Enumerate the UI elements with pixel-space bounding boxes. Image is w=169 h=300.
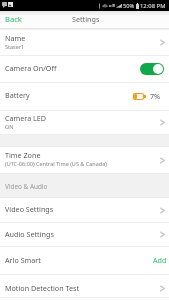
staticText: Back [5,14,22,24]
button[interactable]: Battery [0,83,169,110]
staticText: Video & Audio [5,182,48,191]
staticText: Motion Detection Test [5,283,160,293]
other: Open [160,231,165,238]
other: Battery 7 percent [133,93,146,100]
other: Open [160,285,165,292]
staticText: Battery [5,90,133,100]
staticText: 50% [123,2,135,10]
button[interactable]: Video Settings [0,198,169,222]
button[interactable]: Time Zone [0,147,169,173]
staticText: Add [153,255,167,265]
staticText: Camera LED [5,113,47,123]
staticText: Audio Settings [5,229,160,239]
other: Open [160,207,165,214]
button[interactable]: Audio Settings [0,223,169,246]
staticText: ON [5,123,14,130]
staticText: Arlo Smart [5,255,153,265]
other: Open [160,157,165,164]
staticText: Name [5,33,26,43]
other: Open [160,119,165,126]
button[interactable]: Motion Detection Test [0,275,169,297]
staticText: Video Settings [5,204,160,214]
button[interactable]: Name [0,30,169,55]
staticText: Time Zone [5,150,41,160]
staticText: Staser1 [5,43,25,50]
staticText: 7% [150,91,161,101]
staticText: 12:08 PM [140,2,166,10]
other: Open [160,39,165,46]
staticText: Settings [72,14,100,24]
staticText: (UTC-06:00) Central Time (US & Canada) [5,160,107,167]
staticText: Camera On/Off [5,63,140,73]
button[interactable]: Camera LED [0,111,169,134]
other: Camera on [140,63,164,75]
button[interactable]: Camera On/Off [0,56,169,82]
button[interactable]: Arlo Smart [0,247,169,274]
button[interactable]: Back [0,11,27,28]
